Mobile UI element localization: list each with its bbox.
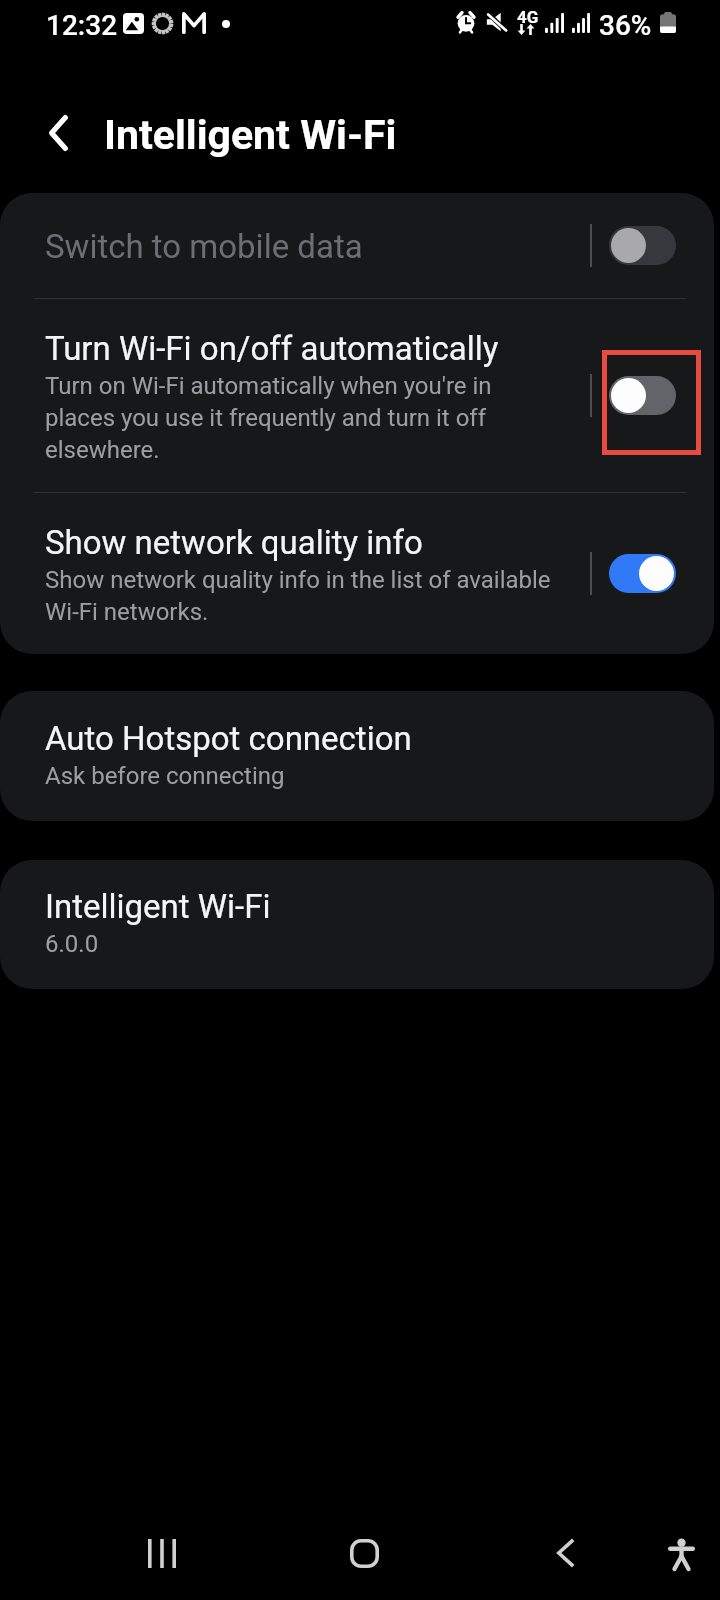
staticText: Turn on Wi-Fi automatically when you're … — [45, 369, 559, 465]
button[interactable]: Back — [516, 1503, 616, 1600]
button[interactable]: Show network quality info — [0, 493, 714, 654]
staticText: Intelligent Wi-Fi — [45, 884, 271, 927]
staticText: Ask before connecting — [45, 759, 285, 791]
button[interactable]: Switch to mobile data — [0, 193, 714, 298]
button[interactable]: Intelligent Wi-Fi — [0, 860, 714, 989]
button[interactable]: Home — [314, 1503, 414, 1600]
button[interactable]: Navigate up — [25, 100, 91, 166]
staticText: Switch to mobile data — [45, 224, 363, 267]
staticText: 4G — [517, 7, 539, 27]
staticText: Turn Wi-Fi on/off automatically — [45, 326, 499, 369]
button[interactable]: Accessibility — [631, 1503, 720, 1600]
button[interactable]: Switch to mobile data — [592, 193, 714, 298]
staticText: 36% — [599, 9, 652, 42]
staticText: 12:32 — [46, 9, 118, 42]
button[interactable]: Show network quality info — [592, 493, 714, 654]
button[interactable]: Auto Hotspot connection — [0, 691, 714, 821]
button[interactable]: Turn Wi-Fi on/off automatically — [0, 299, 714, 492]
staticText: Show network quality info — [45, 520, 423, 563]
staticText: Auto Hotspot connection — [45, 716, 412, 759]
button[interactable]: Recents — [112, 1503, 212, 1600]
staticText: Show network quality info in the list of… — [45, 563, 559, 627]
staticText: Intelligent Wi-Fi — [104, 111, 397, 159]
staticText: 6.0.0 — [45, 927, 99, 959]
button[interactable]: Turn Wi-Fi on/off automatically — [592, 299, 714, 492]
